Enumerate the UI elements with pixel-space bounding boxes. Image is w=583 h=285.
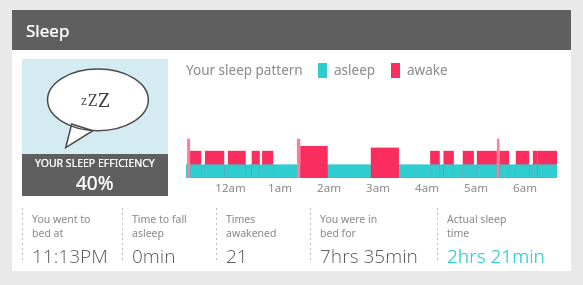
staticText: asleep <box>334 61 376 79</box>
staticText: You went to <box>32 212 91 226</box>
button[interactable]: You were in <box>320 208 437 263</box>
button[interactable]: Actual sleep <box>447 208 561 263</box>
staticText: Times <box>226 212 256 226</box>
staticText: asleep <box>132 226 164 240</box>
staticText: 3am <box>366 180 390 196</box>
staticText: 4am <box>415 180 439 196</box>
staticText: 5am <box>464 180 488 196</box>
button[interactable]: Time to fall <box>132 208 216 263</box>
staticText: 6am <box>513 180 537 196</box>
staticText: 2am <box>317 180 341 196</box>
staticText: Z <box>88 89 98 111</box>
staticText: Your sleep pattern <box>186 61 303 79</box>
staticText: YOUR SLEEP EFFICIENCY <box>35 156 155 170</box>
button[interactable]: Times <box>226 208 310 263</box>
staticText: bed at <box>32 226 64 240</box>
button[interactable]: Sleep <box>12 10 571 50</box>
staticText: 12am <box>215 180 246 196</box>
staticText: 0min <box>132 243 176 263</box>
staticText: 7hrs 35min <box>320 243 418 263</box>
staticText: 40% <box>76 170 114 196</box>
staticText: Actual sleep <box>447 212 507 226</box>
staticText: 1am <box>268 180 292 196</box>
staticText: z <box>81 92 88 108</box>
staticText: Z <box>98 86 110 113</box>
staticText: Sleep <box>26 19 70 42</box>
button[interactable]: Sleep pattern chart <box>186 138 557 178</box>
button[interactable]: You went to <box>32 208 122 263</box>
staticText: You were in <box>320 212 378 226</box>
staticText: 2hrs 21min <box>447 243 545 263</box>
staticText: 21 <box>226 243 248 263</box>
staticText: 11:13PM <box>32 243 108 263</box>
staticText: time <box>447 226 470 240</box>
staticText: Time to fall <box>132 212 187 226</box>
staticText: bed for <box>320 226 356 240</box>
staticText: awake <box>407 61 448 79</box>
button[interactable]: z <box>22 59 168 196</box>
staticText: awakened <box>226 226 277 240</box>
